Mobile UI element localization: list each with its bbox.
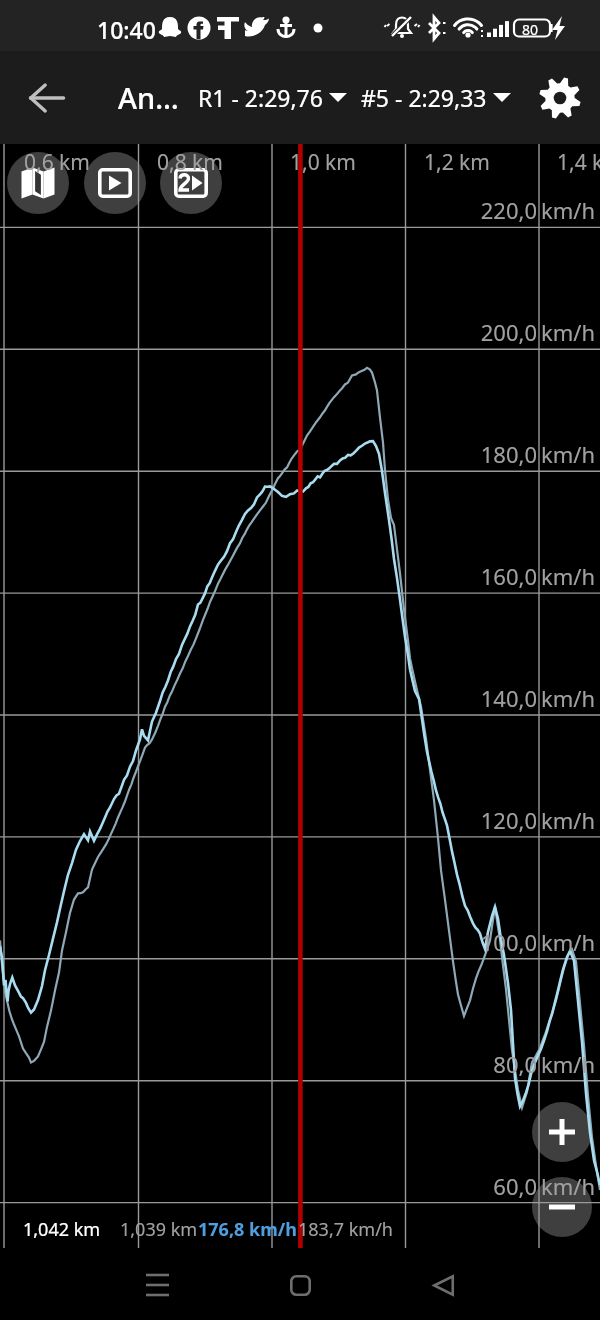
staticText: 80 <box>522 20 539 39</box>
button[interactable]: R1 - 2:29,76 <box>198 51 355 144</box>
staticText: 100,0 <box>437 927 537 957</box>
staticText: km/h <box>541 317 596 347</box>
staticText: 1,0 km <box>290 148 356 177</box>
staticText: km/h <box>541 683 596 713</box>
staticText: 160,0 <box>437 561 537 591</box>
button[interactable]: Show map <box>7 152 69 214</box>
staticText: 176,8 km/h <box>198 1217 297 1242</box>
staticText: km/h <box>541 805 596 835</box>
staticText: 140,0 <box>437 683 537 713</box>
staticText: 10:40 <box>97 14 156 45</box>
staticText: 80,0 <box>437 1049 537 1079</box>
staticText: km/h <box>541 927 596 957</box>
button[interactable]: Zoom out <box>532 1177 592 1237</box>
staticText: km/h <box>541 439 596 469</box>
staticText: 200,0 <box>437 317 537 347</box>
staticText: 0,6 km <box>24 148 90 177</box>
button[interactable]: Playback speed <box>160 152 222 214</box>
staticText: An… <box>118 78 179 117</box>
button[interactable]: Home <box>260 1250 340 1320</box>
button[interactable]: Back <box>403 1250 483 1320</box>
staticText: 1,039 km <box>120 1217 198 1242</box>
staticText: km/h <box>541 1049 596 1079</box>
staticText: km/h <box>541 195 596 225</box>
staticText: R1 - 2:29,76 <box>198 82 323 113</box>
button[interactable]: Navigate up <box>16 51 78 144</box>
button[interactable]: Settings <box>524 51 596 144</box>
staticText: 1,042 km <box>23 1217 101 1242</box>
staticText: 60,0 <box>437 1171 537 1201</box>
staticText: km/h <box>541 1171 596 1201</box>
button[interactable]: Play replay <box>84 152 146 214</box>
staticText: 220,0 <box>437 195 537 225</box>
button[interactable]: Zoom in <box>532 1102 592 1162</box>
staticText: 120,0 <box>437 805 537 835</box>
staticText: km/h <box>541 561 596 591</box>
button[interactable]: Menu <box>117 1250 197 1320</box>
staticText: 183,7 km/h <box>298 1217 393 1242</box>
staticText: #5 - 2:29,33 <box>361 82 487 113</box>
button[interactable]: #5 - 2:29,33 <box>361 51 519 144</box>
staticText: 0,8 km <box>157 148 223 177</box>
staticText: 180,0 <box>437 439 537 469</box>
staticText: 1,4 km <box>557 148 600 177</box>
staticText: 1,2 km <box>424 148 490 177</box>
button[interactable]: An… <box>118 51 179 144</box>
